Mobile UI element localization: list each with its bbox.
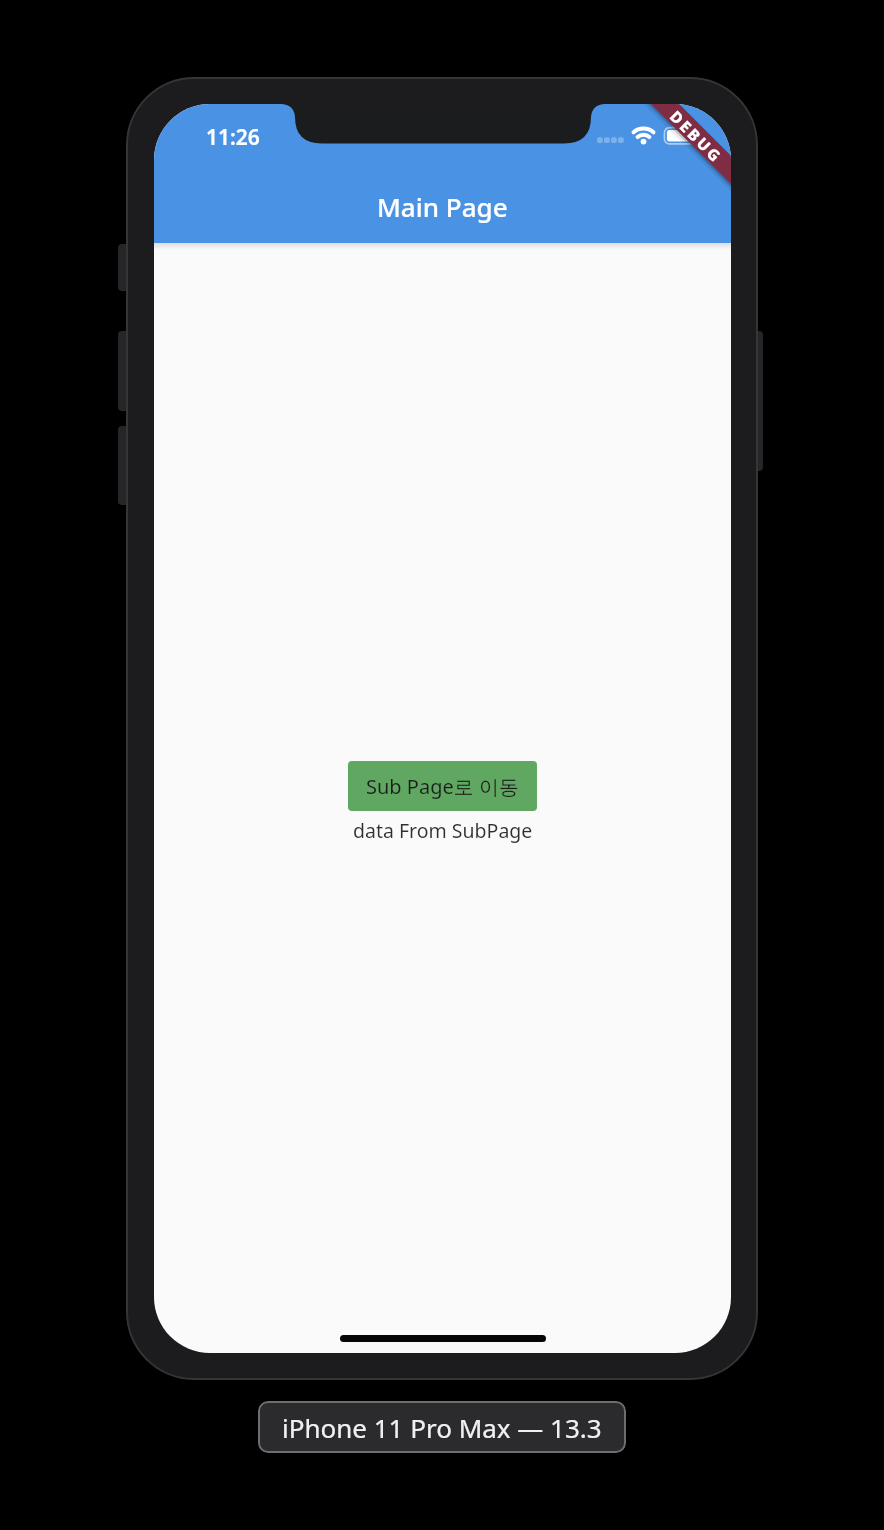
staticText: DEBUG [667, 106, 727, 166]
staticText: Sub Page로 이동 [366, 773, 519, 800]
staticText: data From SubPage [353, 817, 533, 844]
staticText: iPhone 11 Pro Max — 13.3 [282, 1410, 602, 1445]
staticText: Main Page [377, 189, 508, 224]
staticText: 11:26 [206, 123, 260, 152]
button[interactable]: iPhone 11 Pro Max — 13.3 [258, 1401, 626, 1453]
button[interactable]: Sub Page로 이동 [348, 761, 537, 811]
